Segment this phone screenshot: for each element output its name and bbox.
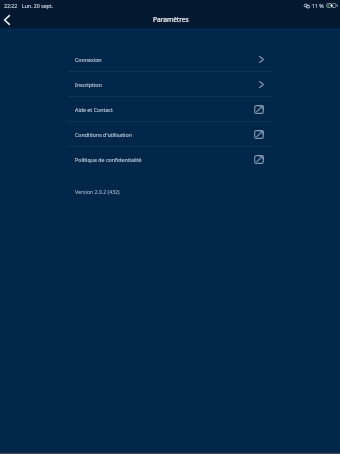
staticText: Conditions d'utilisation bbox=[75, 131, 132, 138]
staticText: Connexion bbox=[75, 56, 102, 63]
button[interactable]: Inscription bbox=[68, 72, 272, 96]
staticText: Inscription bbox=[75, 81, 102, 88]
button[interactable]: Conditions d'utilisation bbox=[68, 122, 272, 146]
staticText: 22:22 bbox=[4, 2, 18, 9]
staticText: Paramètres bbox=[153, 15, 189, 24]
staticText: Lun. 20 sept. bbox=[22, 2, 54, 9]
staticText: Aide et Contact bbox=[75, 106, 113, 113]
button[interactable]: Aide et Contact bbox=[68, 97, 272, 121]
staticText: 11 % bbox=[312, 2, 324, 9]
button[interactable]: Back bbox=[0, 11, 14, 29]
staticText: Version 2.0.2 (432) bbox=[75, 188, 120, 195]
button[interactable]: Politique de confidentialité bbox=[68, 147, 272, 171]
staticText: Politique de confidentialité bbox=[75, 156, 142, 163]
button[interactable]: Connexion bbox=[68, 47, 272, 71]
